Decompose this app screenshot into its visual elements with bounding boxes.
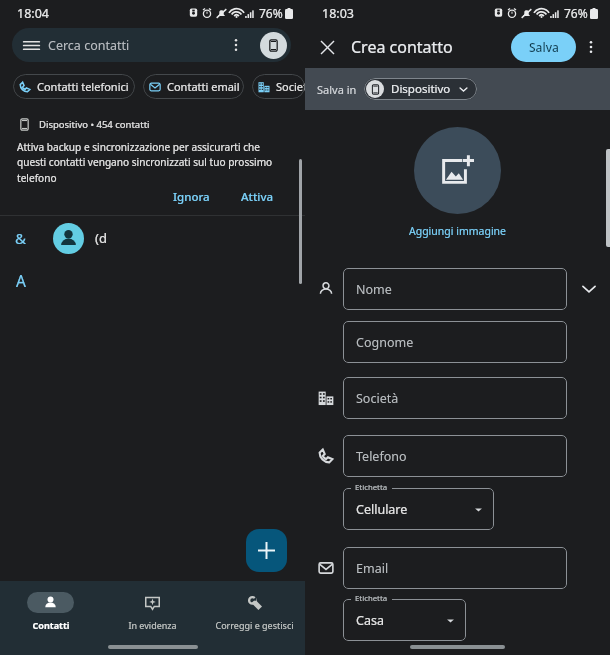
- staticText: Contatti: [32, 619, 70, 631]
- staticText: Cellulare: [356, 501, 408, 518]
- staticText: Crea contatto: [351, 36, 453, 58]
- staticText: Attiva: [241, 189, 274, 205]
- staticText: Email: [356, 560, 389, 577]
- button[interactable]: Email: [343, 547, 567, 589]
- other: Menu: [23, 37, 40, 54]
- button[interactable]: [343, 599, 466, 641]
- staticText: 76%: [564, 5, 588, 21]
- button[interactable]: Società: [343, 377, 567, 419]
- staticText: Dispositivo • 454 contatti: [39, 118, 150, 131]
- button[interactable]: Contatti telefonici: [13, 74, 135, 99]
- staticText: Ignora: [173, 189, 210, 205]
- staticText: Telefono: [356, 448, 407, 465]
- button[interactable]: Aggiungi immagine: [409, 224, 507, 238]
- staticText: In evidenza: [128, 619, 177, 631]
- staticText: 18:03: [322, 5, 354, 22]
- button[interactable]: Telefono: [343, 435, 567, 477]
- button[interactable]: Società: [252, 74, 305, 99]
- staticText: Attiva backup e sincronizzazione per ass…: [17, 140, 281, 185]
- button[interactable]: [343, 488, 494, 530]
- staticText: Etichetta: [355, 482, 388, 493]
- button[interactable]: Nome: [343, 268, 567, 310]
- button[interactable]: Correggi e gestisci: [203, 592, 305, 631]
- button[interactable]: Aggiungi contatto: [246, 529, 287, 572]
- button[interactable]: Altre opzioni: [580, 36, 602, 58]
- staticText: Contatti email: [167, 79, 240, 94]
- button[interactable]: Espandi: [581, 281, 597, 297]
- button[interactable]: Aggiungi immagine: [414, 127, 501, 214]
- staticText: A: [16, 270, 26, 291]
- staticText: 18:04: [17, 5, 49, 22]
- button[interactable]: Salva: [511, 32, 576, 62]
- staticText: Società: [276, 79, 305, 94]
- staticText: (d: [95, 229, 107, 247]
- button[interactable]: In evidenza: [101, 592, 203, 631]
- button[interactable]: Cognome: [343, 321, 567, 363]
- button[interactable]: Altre opzioni: [226, 35, 246, 55]
- button[interactable]: &: [0, 216, 305, 260]
- button[interactable]: Contatti email: [143, 74, 244, 99]
- button[interactable]: Dispositivo: [364, 78, 477, 100]
- staticText: Cerca contatti: [48, 37, 130, 54]
- staticText: Contatti telefonici: [37, 79, 129, 94]
- button[interactable]: Contatti: [0, 592, 101, 631]
- button[interactable]: Chiudi: [315, 35, 339, 59]
- button[interactable]: Attiva: [231, 186, 284, 208]
- button[interactable]: Menu: [12, 28, 291, 62]
- staticText: Casa: [356, 612, 384, 629]
- staticText: Correggi e gestisci: [215, 619, 294, 631]
- staticText: Cognome: [356, 334, 414, 351]
- staticText: &: [15, 228, 26, 248]
- staticText: Dispositivo: [391, 81, 451, 97]
- button[interactable]: Ignora: [163, 186, 220, 208]
- staticText: Salva: [529, 39, 559, 55]
- staticText: Società: [356, 390, 399, 407]
- staticText: Etichetta: [355, 593, 388, 604]
- staticText: Nome: [356, 281, 392, 298]
- staticText: Salva in: [317, 82, 357, 97]
- button[interactable]: Account: [260, 32, 287, 59]
- staticText: 76%: [259, 5, 283, 21]
